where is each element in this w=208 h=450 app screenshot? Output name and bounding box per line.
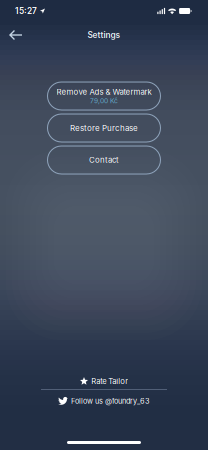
staticText: 79,00 Kč (90, 97, 118, 105)
staticText: Contact (89, 155, 119, 165)
button[interactable]: Restore Purchase (47, 114, 160, 142)
staticText: Remove Ads & Watermark (56, 87, 151, 97)
staticText: 15:27 (15, 6, 37, 16)
staticText: Rate Tailor (91, 377, 128, 386)
button[interactable]: Follow us @foundry_63 (58, 392, 150, 410)
button[interactable]: Rate Tailor (80, 369, 128, 389)
button[interactable]: Contact (47, 146, 160, 174)
button[interactable]: Back (0, 23, 30, 47)
staticText: Restore Purchase (70, 123, 138, 133)
staticText: Follow us @foundry_63 (71, 397, 150, 405)
button[interactable]: Remove Ads & Watermark (47, 82, 160, 110)
staticText: Settings (87, 30, 120, 40)
